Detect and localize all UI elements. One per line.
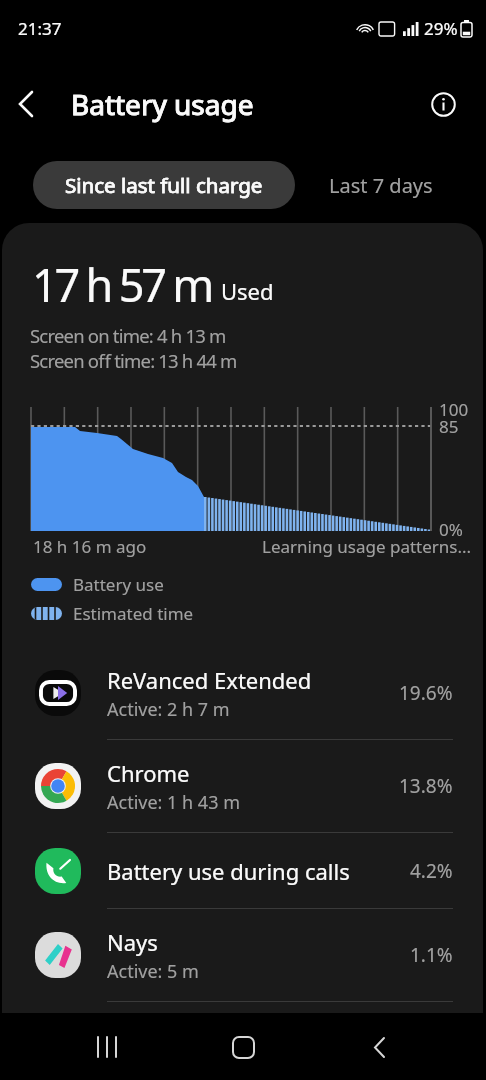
staticText: Screen on time: 4 h 13 m — [30, 323, 226, 348]
staticText: Active: 5 m — [107, 959, 199, 984]
staticText: 13.8% — [399, 773, 453, 799]
staticText: Since last full charge — [65, 171, 263, 199]
staticText: ReVanced Extended — [107, 665, 312, 695]
staticText: Last 7 days — [329, 172, 433, 199]
button[interactable]: ReVanced Extended — [2, 647, 483, 740]
button[interactable]: Chrome — [2, 740, 483, 833]
staticText: Screen off time: 13 h 44 m — [30, 348, 237, 373]
staticText: Estimated time — [73, 602, 194, 625]
staticText: 85 — [439, 415, 459, 438]
button[interactable]: Since last full charge — [33, 161, 295, 209]
staticText: 1.1% — [410, 942, 453, 968]
staticText: 17 h 57 m — [32, 254, 212, 306]
button[interactable]: Battery use during calls — [2, 833, 483, 909]
staticText: Battery use during calls — [107, 856, 350, 886]
button[interactable]: Home — [214, 1018, 272, 1076]
button[interactable]: Last 7 days — [295, 161, 467, 209]
staticText: Learning usage patterns... — [262, 535, 472, 558]
staticText: Chrome — [107, 758, 190, 788]
staticText: 29% — [424, 17, 458, 40]
staticText: 4.2% — [410, 858, 453, 884]
staticText: 0% — [439, 518, 463, 541]
button[interactable]: Navigate up — [0, 78, 52, 130]
staticText: Battery usage — [71, 85, 254, 123]
staticText: 100 — [439, 398, 469, 421]
staticText: Battery usage — [71, 85, 254, 123]
staticText: Active: 2 h 7 m — [107, 697, 230, 722]
staticText: 21:37 — [18, 17, 62, 40]
staticText: 18 h 16 m ago — [33, 535, 147, 558]
button[interactable]: Information — [421, 82, 465, 126]
staticText: 19.6% — [399, 680, 453, 706]
button[interactable]: Back — [350, 1018, 408, 1076]
button[interactable]: Recent apps — [78, 1018, 136, 1076]
button[interactable]: Nays — [2, 909, 483, 1002]
staticText: Active: 1 h 43 m — [107, 790, 240, 815]
staticText: Since last full charge — [65, 171, 263, 199]
staticText: Nays — [107, 927, 158, 957]
staticText: Used — [221, 276, 274, 306]
staticText: Battery use — [73, 573, 164, 596]
